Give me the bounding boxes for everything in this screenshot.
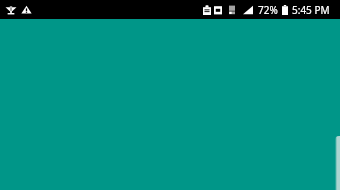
staticText: 72%	[258, 3, 278, 17]
button[interactable]: Side panel	[335, 136, 340, 190]
staticText: 5:45 PM	[292, 3, 330, 17]
